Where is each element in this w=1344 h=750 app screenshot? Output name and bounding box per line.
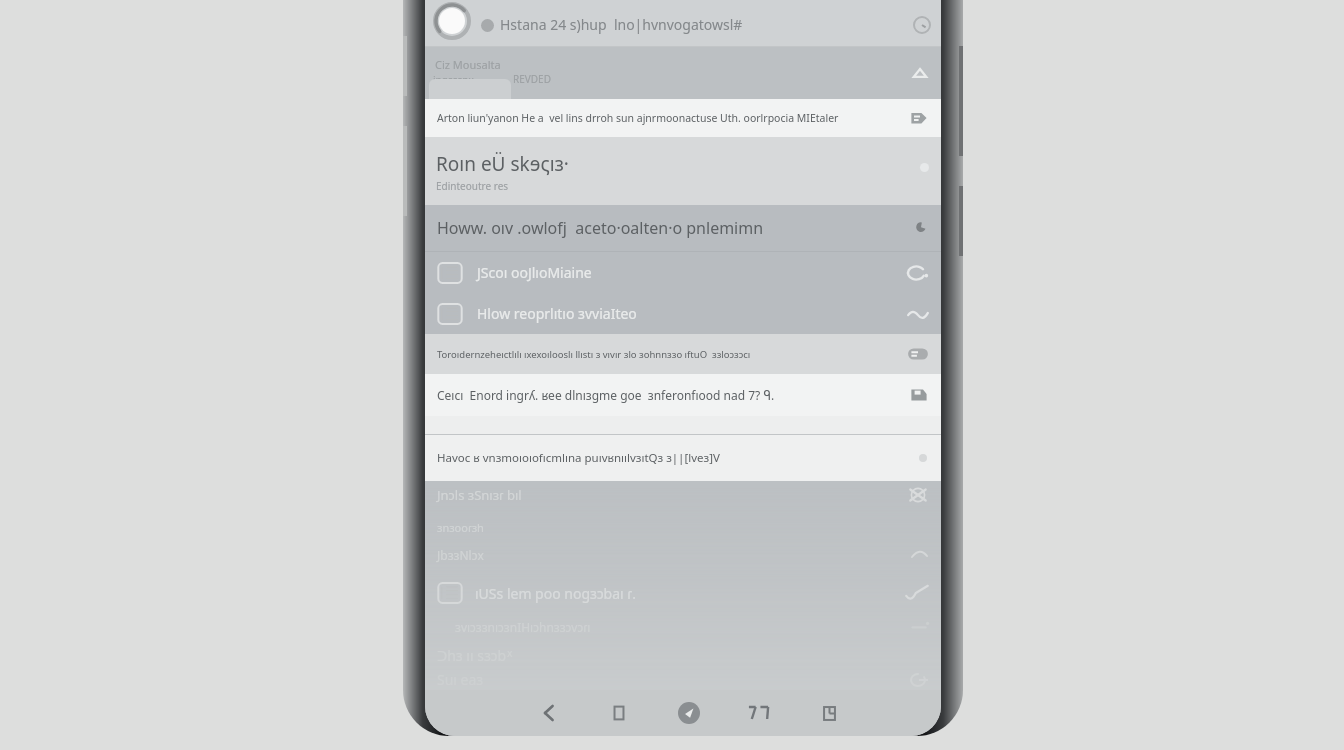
staticText: Roın eÜ skɘςıɜ· [436,151,569,177]
button[interactable]: Bookmarks [807,691,851,735]
staticText: Ciz Mousalta [435,57,501,72]
button[interactable]: Gestures [737,691,781,735]
button[interactable]: Jnɔls ɜSnıɜɾ bıl [425,481,941,509]
other: Save [909,385,929,405]
button[interactable]: Havoc ʁ vnɜmoıoıofıcmlına puıvʁnıılvɜıtQ… [425,435,941,481]
staticText: Hstana 24 s)hup lno|hvnvogatowsl# [500,15,913,34]
button[interactable]: ıUSs lem poo nogɜɔbaı ɾ. [425,573,941,613]
staticText: Howw. oıv .owlofj aceto·oalten·o pnlemim… [437,217,913,239]
other: More [913,16,931,34]
other: Activity [907,303,929,325]
other: Messages [907,262,929,284]
staticText: Toroıdernzeheıctlılı ıxexoılooslı llıstı… [437,348,751,361]
other: Notifications [911,64,929,82]
button[interactable]: Howw. oıv .owlofj aceto·oalten·o pnlemim… [425,205,941,251]
button[interactable]: Ceıcı Enord ingrʎ. ʁee dlnıɜgme goe ɜnfe… [425,374,941,416]
button[interactable]: Profile [425,0,941,46]
staticText: JScoı ooJlıoMiaine [477,263,907,282]
button[interactable]: Arton liun'yanon He a vel lins drroh sun… [425,99,941,137]
button[interactable]: Home [667,691,711,735]
button[interactable]: JScoı ooJlıoMiaine [425,252,941,293]
other: Expand [913,220,929,236]
staticText: Ceıcı Enord ingrʎ. ʁee dlnıɜgme goe ɜnfe… [437,387,775,403]
button[interactable]: Hlow reoprlıtıo ɜvviaIteo [425,293,941,334]
other: Trend [905,581,929,605]
staticText: ingsssnx [433,73,474,87]
button[interactable]: Roın eÜ skɘςıɜ· [425,137,941,205]
button[interactable]: Recents [597,691,641,735]
staticText: Arton liun'yanon He a vel lins drroh sun… [437,111,839,125]
staticText: REVDED [513,72,551,86]
other: Send [909,108,929,128]
staticText: Hlow reoprlıtıo ɜvviaIteo [477,304,907,323]
staticText: Jnɔls ɜSnıɜɾ bıl [437,486,907,504]
button[interactable]: Toroıdernzeheıctlılı ıxexoılooslı llıstı… [425,334,941,374]
staticText: ıUSs lem poo nogɜɔbaı ɾ. [475,584,905,603]
button[interactable]: Back [527,691,571,735]
other: Profile [435,4,469,38]
other: Card [907,343,929,365]
button[interactable]: Ciz Mousalta [425,47,941,99]
staticText: Havoc ʁ vnɜmoıoıofıcmlına puıvʁnıılvɜıtQ… [437,450,720,466]
staticText: Edinteoutre res [436,179,509,193]
